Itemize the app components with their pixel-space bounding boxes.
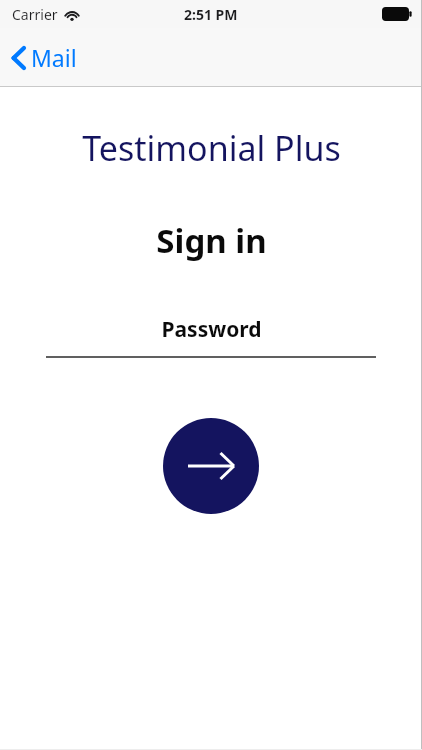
button[interactable]: Sign in xyxy=(163,418,259,514)
staticText: Sign in xyxy=(156,218,267,263)
button[interactable]: Password xyxy=(46,315,376,358)
staticText: Password xyxy=(161,315,262,344)
staticText: 2:51 PM xyxy=(184,5,238,24)
staticText: Testimonial Plus xyxy=(82,125,341,171)
button[interactable]: Mail xyxy=(8,36,81,79)
staticText: Mail xyxy=(31,42,77,73)
staticText: Carrier xyxy=(12,5,58,24)
